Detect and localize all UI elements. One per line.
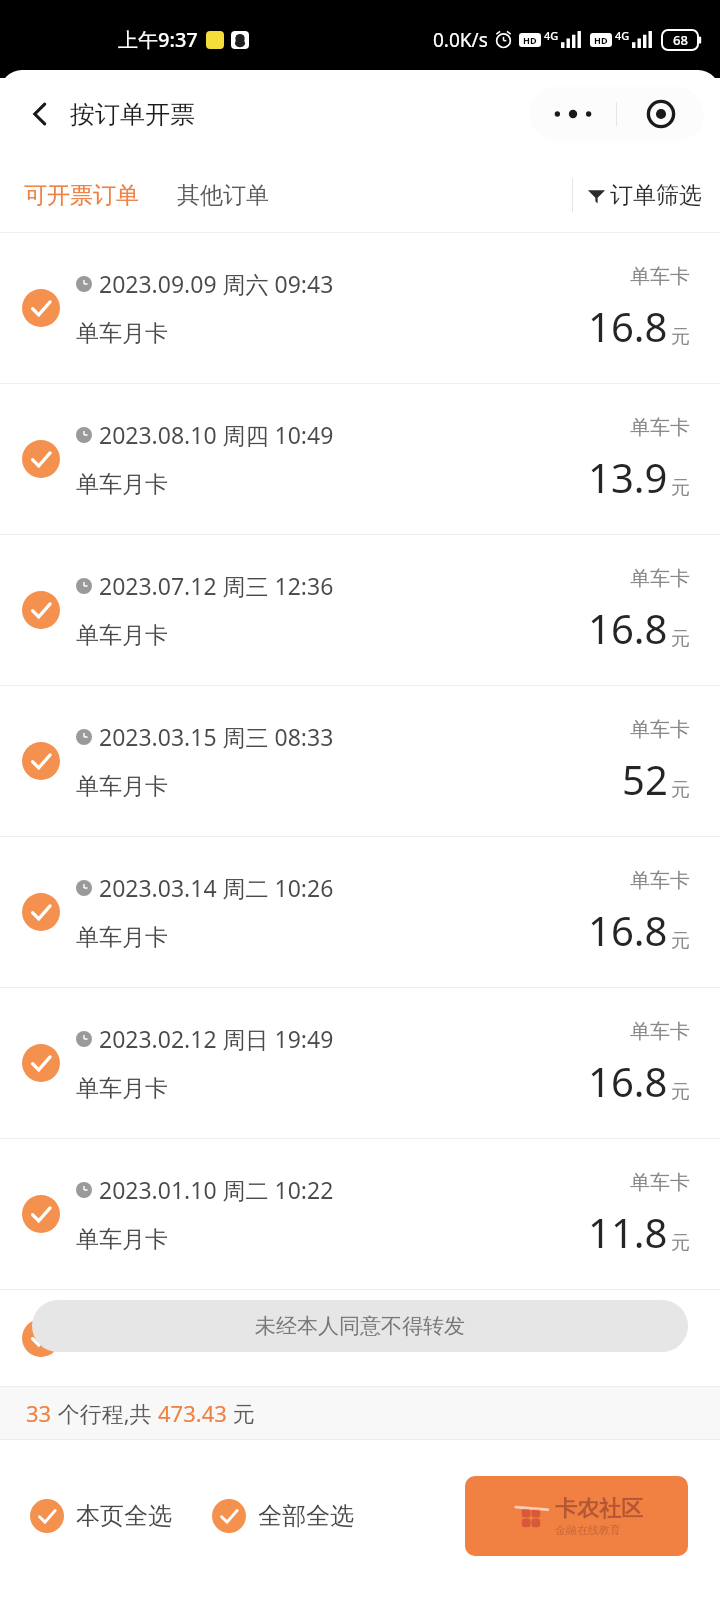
staticText: 单车月卡 — [76, 470, 168, 499]
button[interactable]: 2023.01.10 周二 10:22 — [0, 1139, 720, 1289]
button[interactable]: 其他订单 — [171, 173, 275, 218]
staticText: 16.8 — [588, 299, 668, 353]
button[interactable]: 2023.08.10 周四 10:49 — [0, 384, 720, 534]
other: Mini program menu — [529, 87, 704, 141]
staticText: 单车月卡 — [76, 1074, 168, 1103]
staticText: 4G — [544, 28, 559, 43]
staticText: 全部全选 — [258, 1501, 354, 1531]
staticText: 未经本人同意不得转发 — [255, 1313, 465, 1339]
staticText: 2023.03.14 周二 10:26 — [99, 872, 334, 903]
staticText: HD — [594, 34, 608, 46]
staticText: 0.0K/s — [433, 27, 488, 53]
staticText: 2023.03.15 周三 08:33 — [99, 721, 334, 752]
staticText: 金融在线教育 — [555, 1523, 621, 1537]
staticText: 元 — [671, 1080, 690, 1104]
staticText: 个行程,共 — [52, 1398, 158, 1428]
button[interactable]: 可开票订单 — [18, 173, 145, 218]
staticText: 68 — [673, 31, 688, 49]
staticText: 订单筛选 — [610, 181, 702, 210]
staticText: 单车卡 — [630, 566, 690, 591]
staticText: 元 — [671, 325, 690, 349]
staticText: 单车卡 — [630, 264, 690, 289]
button[interactable]: 全部全选 — [208, 1485, 358, 1547]
staticText: 其他订单 — [177, 181, 269, 210]
staticText: 单车月卡 — [76, 319, 168, 348]
button[interactable]: 订单筛选 — [573, 173, 702, 218]
staticText: 单车月卡 — [76, 621, 168, 650]
staticText: 16.8 — [588, 903, 668, 957]
staticText: 4G — [615, 28, 630, 43]
staticText: 2023.07.12 周三 12:36 — [99, 570, 334, 601]
button[interactable]: 本页全选 — [26, 1485, 176, 1547]
staticText: 元 — [671, 476, 690, 500]
staticText: 单车月卡 — [76, 923, 168, 952]
staticText: 11.8 — [588, 1205, 668, 1259]
staticText: 元 — [227, 1398, 255, 1428]
staticText: 元 — [671, 627, 690, 651]
staticText: 52 — [622, 752, 668, 806]
staticText: 2023.02.12 周日 19:49 — [99, 1023, 334, 1054]
staticText: 2023.01.10 周二 10:22 — [99, 1174, 334, 1205]
button[interactable]: 2023.07.12 周三 12:36 — [0, 535, 720, 685]
staticText: 元 — [671, 929, 690, 953]
staticText: 单车卡 — [630, 1170, 690, 1195]
staticText: 可开票订单 — [24, 181, 139, 210]
staticText: 上午9:37 — [118, 26, 198, 53]
staticText: 单车月卡 — [76, 772, 168, 801]
button[interactable]: 2023.09.09 周六 09:43 — [0, 233, 720, 383]
staticText: 13.9 — [588, 450, 668, 504]
button[interactable]: 2023.03.15 周三 08:33 — [0, 686, 720, 836]
button[interactable]: 开票 — [465, 1476, 688, 1556]
staticText: 单车卡 — [630, 717, 690, 742]
staticText: 本页全选 — [76, 1501, 172, 1531]
staticText: HD — [523, 34, 537, 46]
button[interactable]: Back — [18, 92, 62, 136]
staticText: 按订单开票 — [70, 99, 195, 130]
staticText: 单车卡 — [630, 1019, 690, 1044]
staticText: 单车卡 — [630, 868, 690, 893]
staticText: 元 — [671, 778, 690, 802]
staticText: 2023.08.10 周四 10:49 — [99, 419, 334, 450]
button[interactable]: More — [529, 87, 616, 141]
staticText: 16.8 — [588, 1054, 668, 1108]
staticText: 单车卡 — [630, 415, 690, 440]
staticText: 33 — [26, 1398, 52, 1428]
staticText: 单车月卡 — [76, 1225, 168, 1254]
staticText: 473.43 — [158, 1398, 227, 1428]
staticText: 卡农社区 — [555, 1495, 643, 1523]
button[interactable]: 2023.02.12 周日 19:49 — [0, 988, 720, 1138]
staticText: 16.8 — [588, 601, 668, 655]
button[interactable]: Close — [617, 87, 704, 141]
button[interactable]: 2023.03.14 周二 10:26 — [0, 837, 720, 987]
staticText: 2023.09.09 周六 09:43 — [99, 268, 334, 299]
staticText: 元 — [671, 1231, 690, 1255]
